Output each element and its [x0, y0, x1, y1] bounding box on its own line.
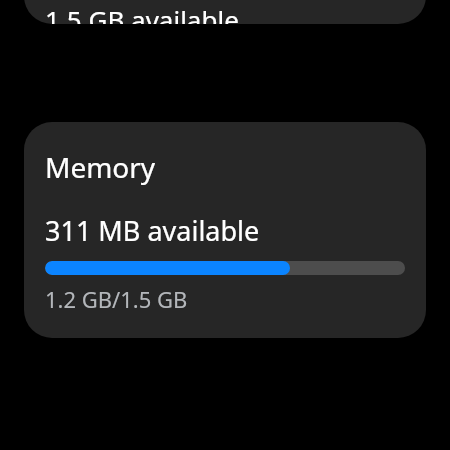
staticText: 1.5 GB available: [45, 2, 239, 24]
staticText: 1.2 GB/1.5 GB: [45, 284, 188, 314]
staticText: Memory: [45, 148, 156, 186]
button[interactable]: Storage: [24, 0, 426, 24]
staticText: 311 MB available: [45, 212, 260, 249]
button[interactable]: Memory: [24, 122, 426, 338]
